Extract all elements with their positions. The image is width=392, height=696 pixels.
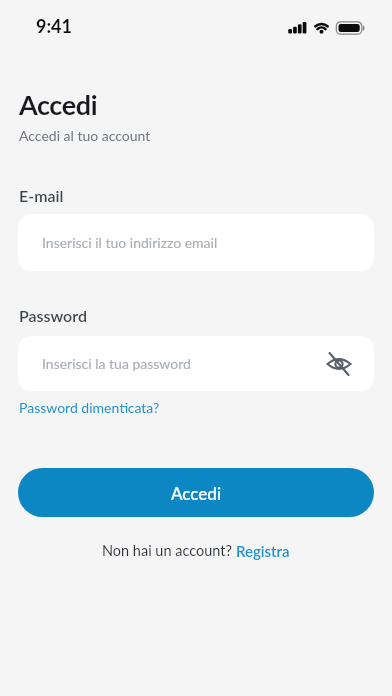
button[interactable]: Inserisci la tua password	[18, 336, 374, 391]
staticText: Inserisci la tua password	[42, 355, 191, 372]
staticText: Password	[19, 306, 87, 325]
button[interactable]: Inserisci il tuo indirizzo email	[18, 214, 374, 271]
button[interactable]	[317, 342, 361, 386]
staticText: 9:41	[36, 15, 72, 37]
staticText: E-mail	[19, 186, 64, 205]
staticText: Non hai un account?	[102, 542, 236, 559]
staticText: Accedi al tuo account	[19, 127, 151, 144]
staticText: Accedi	[19, 88, 98, 120]
staticText: Inserisci il tuo indirizzo email	[42, 234, 218, 251]
button[interactable]: Password dimenticata?	[19, 399, 160, 416]
button[interactable]: Registra	[236, 542, 290, 560]
staticText: Accedi	[171, 483, 222, 503]
button[interactable]: Accedi	[18, 468, 374, 517]
